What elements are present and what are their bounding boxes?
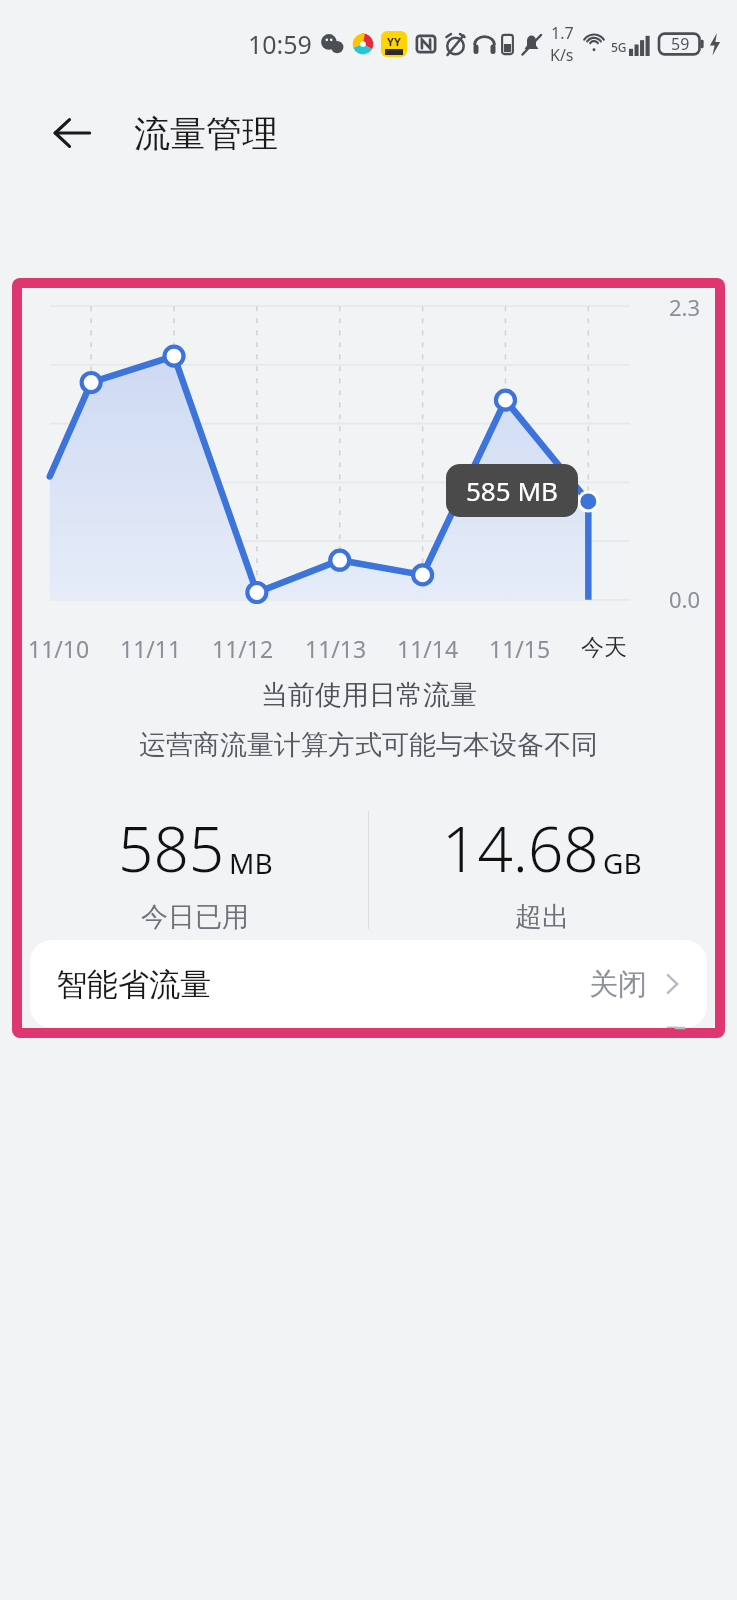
staticText: 11/10 [28,633,90,664]
button[interactable]: Back [40,101,104,165]
staticText: 11/13 [305,633,367,664]
staticText: 14.68 [442,806,599,890]
staticText: 当前使用日常流量 [261,678,477,712]
staticText: 11/14 [397,633,459,664]
staticText: 585 [118,806,225,890]
staticText: 今天 [581,633,627,662]
staticText: 1.7 [551,22,574,44]
staticText: YY [387,34,401,49]
staticText: 今日已用 [141,900,249,934]
staticText: MB [229,844,273,882]
staticText: 5G [611,39,627,55]
staticText: GB [603,844,642,882]
staticText: 10:59 [248,27,312,61]
staticText: 0.0 [669,584,701,614]
staticText: 2.3 [669,292,701,322]
staticText: 11/11 [120,633,182,664]
staticText: 智能省流量 [56,965,211,1004]
staticText: 59 [671,33,690,55]
staticText: 关闭 [589,966,647,1003]
staticText: 流量管理 [134,111,278,156]
staticText: 11/15 [489,633,551,664]
staticText: K/s [550,44,574,66]
staticText: 11/12 [212,633,274,664]
staticText: 超出 [515,900,569,934]
staticText: 运营商流量计算方式可能与本设备不同 [139,728,598,762]
button[interactable]: 智能省流量 [30,940,707,1028]
staticText: 585 MB [466,473,558,508]
